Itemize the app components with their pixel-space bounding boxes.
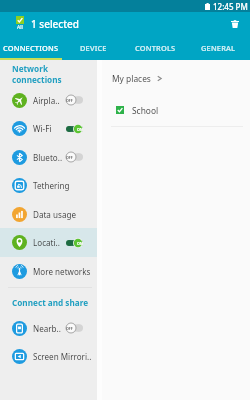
button[interactable]: Switch on — [66, 238, 83, 248]
button[interactable]: Airpla.. — [0, 86, 97, 114]
button[interactable]: DEVICE — [62, 38, 124, 60]
button[interactable]: Screen Mirrori.. — [0, 342, 97, 370]
button[interactable]: Select all — [16, 16, 24, 31]
staticText: Blueto.. — [33, 152, 63, 163]
staticText: Tethering — [33, 180, 70, 191]
staticText: School — [132, 105, 159, 116]
button[interactable]: Tethering — [0, 171, 97, 200]
staticText: OFF — [66, 98, 73, 103]
staticText: OFF — [66, 326, 73, 331]
staticText: More networks — [33, 266, 91, 277]
staticText: Data usage — [33, 209, 76, 220]
button[interactable]: Data usage — [0, 200, 97, 228]
staticText: Network connections — [12, 63, 97, 85]
button[interactable]: Switch off — [66, 323, 83, 333]
button[interactable]: Wi-Fi — [0, 114, 97, 143]
button[interactable]: Switch off — [66, 152, 83, 162]
staticText: ON — [77, 241, 83, 246]
staticText: Airpla.. — [33, 95, 60, 106]
button[interactable]: CONTROLS — [124, 38, 187, 60]
staticText: Connect and share — [12, 297, 89, 308]
button[interactable]: My places — [102, 63, 250, 94]
button[interactable]: Switch off — [66, 95, 83, 105]
staticText: Wi-Fi — [33, 123, 52, 134]
staticText: 12:45 PM — [213, 1, 248, 12]
staticText: CONNECTIONS — [3, 43, 59, 53]
button[interactable]: Nearb.. — [0, 314, 97, 342]
button[interactable]: GENERAL — [187, 38, 250, 60]
button[interactable]: Blueto.. — [0, 143, 97, 171]
staticText: All — [17, 24, 23, 31]
staticText: DEVICE — [80, 43, 107, 53]
staticText: 1 selected — [31, 17, 80, 31]
staticText: ON — [77, 127, 83, 132]
staticText: OFF — [66, 155, 73, 160]
staticText: Locati.. — [33, 237, 60, 248]
button[interactable]: CONNECTIONS — [0, 38, 62, 60]
button[interactable]: More networks — [0, 257, 97, 285]
staticText: My places — [112, 73, 151, 84]
button[interactable]: Switch on — [66, 124, 83, 134]
staticText: GENERAL — [201, 43, 236, 53]
button[interactable]: Delete — [223, 14, 247, 34]
button[interactable]: Locati.. — [0, 228, 97, 257]
staticText: Screen Mirrori.. — [33, 351, 92, 362]
button[interactable]: School — [102, 94, 250, 126]
staticText: Nearb.. — [33, 323, 61, 334]
staticText: CONTROLS — [135, 43, 176, 53]
